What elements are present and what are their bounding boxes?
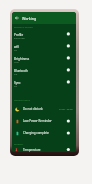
staticText: wifi <box>14 45 19 49</box>
staticText: Charging complete <box>23 131 67 135</box>
staticText: Bluetooth <box>14 69 28 73</box>
button[interactable]: wifi <box>12 42 76 54</box>
staticText: Off <box>14 73 18 76</box>
button[interactable]: Charging complete <box>12 127 76 139</box>
button[interactable]: Sync <box>12 78 76 90</box>
staticText: Low Power Reminder <box>23 119 67 123</box>
staticText: On <box>14 85 17 88</box>
staticText: Edit profile <box>14 37 25 40</box>
button[interactable]: Back <box>12 12 22 24</box>
staticText: GENERAL <box>14 143 24 146</box>
staticText: NOTIFICATIONS <box>14 99 30 102</box>
staticText: Do not disturb <box>23 107 59 111</box>
button[interactable]: Brightness <box>12 54 76 66</box>
button[interactable]: Bluetooth <box>12 66 76 78</box>
staticText: Working <box>22 16 37 21</box>
button[interactable]: Do not disturb <box>12 103 76 115</box>
staticText: Auto <box>14 61 19 64</box>
staticText: 23:00 - 06:00 <box>59 108 73 111</box>
staticText: Brightness <box>14 57 30 61</box>
button[interactable]: Temperature <box>12 147 76 152</box>
staticText: Temperature <box>23 148 67 152</box>
staticText: On <box>14 49 17 52</box>
staticText: Sync <box>14 81 21 85</box>
staticText: Profile <box>14 33 24 37</box>
button[interactable]: Low Power Reminder <box>12 115 76 127</box>
staticText: PERSONALIZATION <box>14 26 34 29</box>
button[interactable]: Profile <box>12 30 76 42</box>
